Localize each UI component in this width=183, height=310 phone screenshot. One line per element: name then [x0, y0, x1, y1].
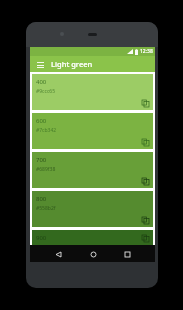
staticText: 600: [36, 117, 47, 125]
button[interactable]: Copy hex code: [140, 233, 150, 243]
button[interactable]: Copy hex code: [140, 98, 150, 108]
staticText: 700: [36, 156, 47, 164]
button[interactable]: 900: [32, 230, 153, 245]
button[interactable]: Open navigation drawer: [35, 59, 46, 70]
staticText: #558b2f: [36, 205, 56, 212]
button[interactable]: Back: [51, 247, 65, 261]
staticText: #7cb342: [36, 127, 57, 134]
staticText: 400: [36, 78, 47, 86]
staticText: #689f38: [36, 166, 56, 173]
button[interactable]: 600: [32, 113, 153, 149]
button[interactable]: Recent apps: [120, 247, 134, 261]
staticText: #9ccc65: [36, 88, 56, 95]
button[interactable]: 800: [32, 191, 153, 227]
staticText: 900: [36, 234, 47, 242]
button[interactable]: 400: [32, 74, 153, 110]
button[interactable]: Copy hex code: [140, 215, 150, 225]
button[interactable]: Home: [86, 247, 100, 261]
button[interactable]: Copy hex code: [140, 176, 150, 186]
button[interactable]: 700: [32, 152, 153, 188]
staticText: 800: [36, 195, 47, 203]
staticText: Light green: [51, 59, 93, 69]
button[interactable]: Copy hex code: [140, 137, 150, 147]
staticText: 12:38: [140, 48, 153, 55]
